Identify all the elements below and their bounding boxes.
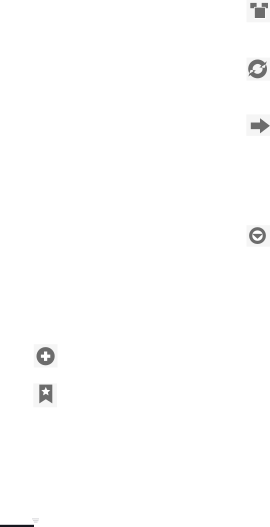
- button[interactable]: Add: [34, 344, 57, 367]
- button[interactable]: Continue: [246, 114, 270, 136]
- button[interactable]: Show more: [246, 225, 270, 247]
- button[interactable]: Refresh: [246, 58, 270, 81]
- button[interactable]: Bookmark: [33, 383, 57, 407]
- button[interactable]: Duplicate: [246, 0, 270, 22]
